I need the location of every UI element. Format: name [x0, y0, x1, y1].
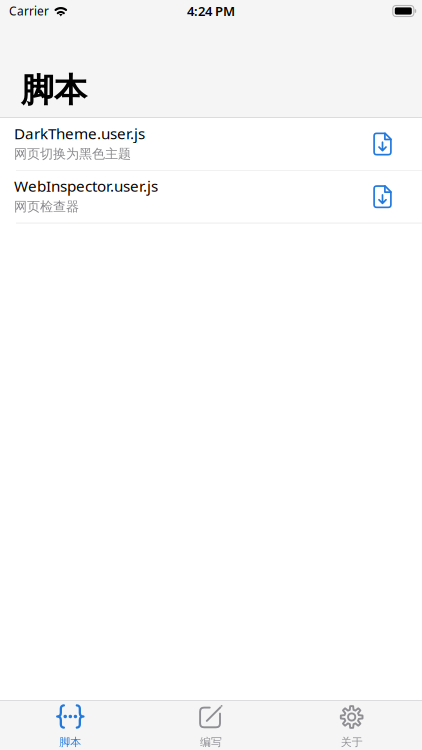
- staticText: WebInspector.user.js: [14, 176, 158, 196]
- staticText: 编写: [200, 735, 222, 749]
- staticText: 脚本: [21, 69, 87, 111]
- staticText: 脚本: [59, 735, 81, 749]
- staticText: 网页切换为黑色主题: [14, 146, 131, 162]
- button[interactable]: 脚本: [0, 700, 141, 750]
- staticText: 网页检查器: [14, 198, 79, 215]
- button[interactable]: DarkTheme.user.js: [0, 118, 422, 170]
- staticText: DarkTheme.user.js: [14, 123, 145, 144]
- staticText: 关于: [341, 735, 363, 749]
- button[interactable]: 关于: [281, 700, 422, 750]
- button[interactable]: WebInspector.user.js: [0, 171, 422, 223]
- staticText: 4:24 PM: [187, 2, 235, 20]
- button[interactable]: 编写: [141, 700, 281, 750]
- staticText: Carrier: [9, 3, 49, 19]
